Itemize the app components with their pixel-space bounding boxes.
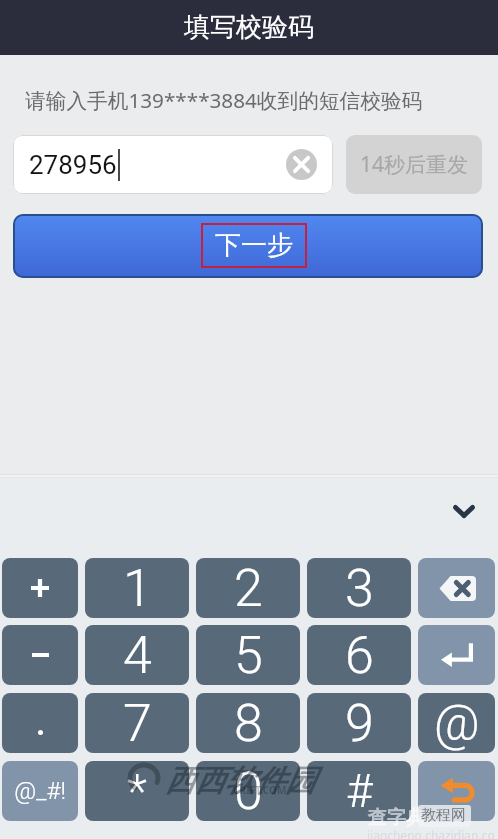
staticText: 14秒后重发 <box>360 150 469 179</box>
button[interactable]: Enter <box>418 625 495 685</box>
staticText: 7 <box>123 693 152 753</box>
button[interactable]: 14秒后重发 <box>346 135 482 194</box>
staticText: 2 <box>234 558 263 618</box>
staticText: 3 <box>345 558 374 618</box>
button[interactable]: 4 <box>85 625 189 685</box>
staticText: 下一步 <box>215 229 293 262</box>
staticText: 1 <box>123 558 152 618</box>
staticText: 教程网 <box>421 806 466 825</box>
button[interactable]: # <box>307 761 411 821</box>
staticText: @_#! <box>14 777 66 805</box>
button[interactable]: 下一步 <box>13 214 483 278</box>
staticText: 278956 <box>29 150 117 180</box>
button[interactable]: Backspace <box>418 558 495 618</box>
staticText: 5 <box>234 625 263 685</box>
button[interactable]: Clear text <box>286 149 317 180</box>
button[interactable]: 5 <box>196 625 300 685</box>
button[interactable]: 278956 <box>13 135 333 194</box>
staticText: 0 <box>234 761 263 821</box>
button[interactable]: Hide keyboard <box>446 493 482 529</box>
staticText: 4 <box>123 625 152 685</box>
button[interactable]: * <box>85 761 189 821</box>
staticText: jiaocheng.chazidian.com <box>367 827 498 839</box>
staticText: CRIFT.COM <box>233 783 287 797</box>
button[interactable]: 1 <box>85 558 189 618</box>
staticText: 西西软件园 <box>165 762 315 800</box>
button[interactable]: 2 <box>196 558 300 618</box>
button[interactable]: 7 <box>85 693 189 753</box>
button[interactable] <box>2 693 78 753</box>
staticText: * <box>127 764 147 818</box>
button[interactable]: 9 <box>307 693 411 753</box>
button[interactable]: Undo <box>418 761 495 821</box>
staticText: 请输入手机139****3884收到的短信校验码 <box>25 86 423 114</box>
staticText: # <box>346 764 373 818</box>
button[interactable]: 3 <box>307 558 411 618</box>
button[interactable]: At sign <box>418 693 495 753</box>
button[interactable] <box>2 625 78 685</box>
button[interactable]: 6 <box>307 625 411 685</box>
staticText: 查字典 <box>368 806 425 830</box>
staticText: 8 <box>234 693 263 753</box>
button[interactable] <box>2 558 78 618</box>
button[interactable]: @_#! <box>2 761 78 821</box>
button[interactable]: 0 <box>196 761 300 821</box>
staticText: 9 <box>345 693 374 753</box>
staticText: 填写校验码 <box>184 11 314 44</box>
staticText: @ <box>434 694 480 753</box>
staticText: 6 <box>345 625 374 685</box>
button[interactable]: 8 <box>196 693 300 753</box>
